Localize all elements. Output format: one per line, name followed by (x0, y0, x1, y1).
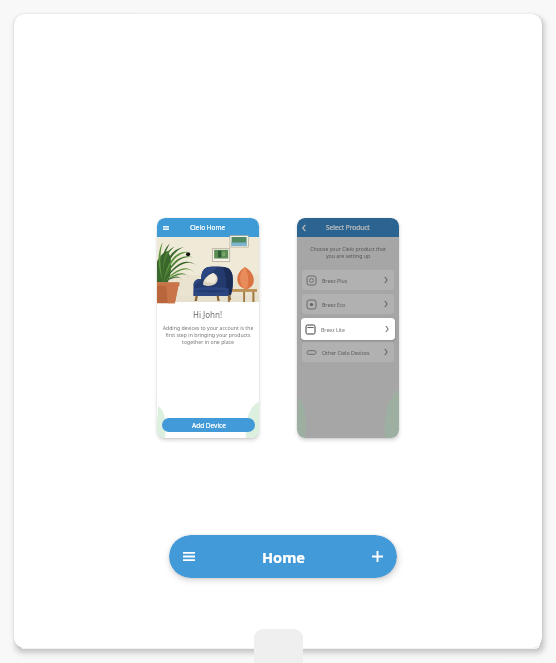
button[interactable]: Back (297, 218, 399, 237)
staticText: Select Product (326, 223, 370, 232)
staticText: Choose your Cielo product that you are s… (307, 245, 389, 260)
button[interactable]: Add Device (162, 418, 255, 432)
button[interactable]: Menu (169, 535, 209, 578)
button[interactable]: Breez Plus (302, 270, 394, 290)
staticText: Breez Eco (322, 301, 346, 308)
button[interactable]: Breez Eco (302, 294, 394, 314)
button[interactable]: Add (357, 535, 397, 578)
staticText: Add Device (192, 421, 226, 430)
staticText: Other Cielo Devices (322, 349, 370, 356)
staticText: Cielo Home (190, 223, 226, 232)
staticText: Adding devices to your account is the fi… (162, 324, 254, 345)
staticText: Breez Lite (321, 326, 345, 333)
staticText: Breez Plus (322, 277, 348, 284)
staticText: Home (262, 547, 305, 567)
staticText: Hi John! (193, 309, 223, 320)
button[interactable]: Back (297, 218, 311, 237)
button[interactable]: Menu (157, 218, 259, 237)
button[interactable]: Breez Lite (301, 318, 395, 340)
button[interactable]: Other Cielo Devices (302, 342, 394, 362)
button[interactable]: Menu (157, 218, 174, 237)
button[interactable]: Menu (169, 535, 397, 578)
